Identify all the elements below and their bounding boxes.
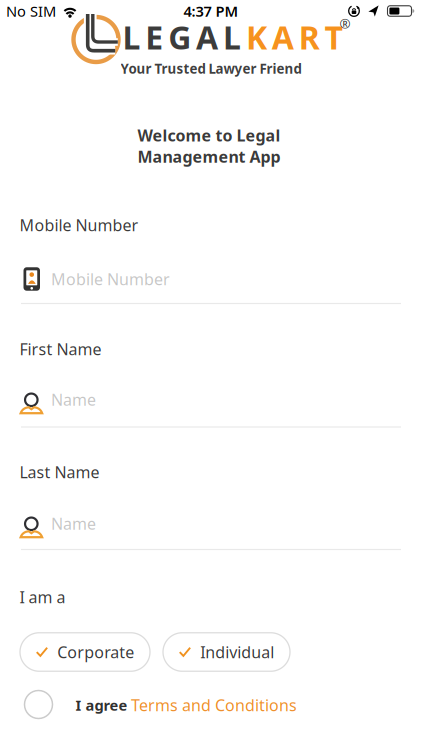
staticText: Last Name — [19, 461, 99, 483]
staticText: G — [168, 16, 191, 58]
button[interactable]: Corporate — [20, 633, 150, 671]
staticText: Management App — [137, 146, 280, 167]
staticText: R — [299, 16, 320, 58]
button[interactable]: Terms and Conditions — [131, 694, 297, 716]
staticText: L — [122, 16, 140, 58]
staticText: Your Trusted Lawyer Friend — [120, 60, 301, 77]
button[interactable] — [24, 690, 52, 718]
staticText: Welcome to Legal — [137, 125, 280, 146]
staticText: L — [223, 16, 241, 58]
staticText: Corporate — [57, 641, 134, 663]
staticText: E — [145, 16, 163, 58]
staticText: Individual — [200, 641, 274, 663]
staticText: Mobile Number — [19, 214, 138, 236]
button[interactable]: Name — [0, 503, 422, 547]
button[interactable]: Mobile Number — [0, 257, 422, 301]
staticText: K — [246, 16, 267, 58]
staticText: T — [325, 16, 343, 58]
button[interactable]: Individual — [163, 633, 290, 671]
button[interactable]: Name — [0, 379, 422, 423]
staticText: Mobile Number — [51, 268, 170, 290]
staticText: I am a — [19, 586, 65, 608]
staticText: Name — [51, 389, 96, 410]
staticText: Name — [51, 513, 96, 534]
staticText: First Name — [19, 338, 101, 360]
staticText: No SIM — [6, 1, 56, 21]
staticText: 4:37 PM — [183, 1, 238, 21]
staticText: I agree — [75, 695, 127, 715]
staticText: A — [196, 16, 218, 58]
staticText: Terms and Conditions — [131, 694, 297, 716]
staticText: A — [272, 16, 294, 58]
staticText: ® — [339, 15, 350, 32]
